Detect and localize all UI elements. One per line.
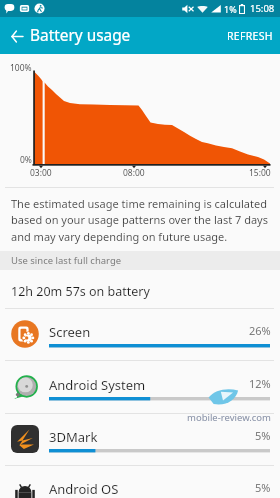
- staticText: Android OS: [49, 480, 119, 498]
- staticText: 08:00: [123, 167, 145, 179]
- button[interactable]: Android System: [0, 361, 280, 413]
- staticText: 100%: [10, 62, 32, 74]
- staticText: 03:00: [30, 167, 52, 179]
- staticText: 15:08: [250, 2, 275, 15]
- button[interactable]: Screen: [0, 308, 280, 360]
- staticText: Screen: [49, 323, 91, 341]
- staticText: 1%: [224, 3, 237, 15]
- staticText: REFRESH: [227, 29, 273, 43]
- staticText: 0%: [20, 154, 32, 166]
- button[interactable]: 3DMark: [0, 413, 280, 465]
- staticText: 12%: [249, 376, 271, 391]
- staticText: 5%: [255, 428, 271, 443]
- button[interactable]: REFRESH: [220, 20, 280, 52]
- staticText: 12h 20m 57s on battery: [11, 283, 150, 300]
- staticText: 5%: [255, 480, 271, 495]
- staticText: 26%: [249, 323, 271, 338]
- staticText: Android System: [49, 376, 146, 394]
- staticText: The estimated usage time remaining is ca…: [11, 196, 270, 245]
- staticText: Use since last full charge: [11, 254, 122, 267]
- staticText: 3DMark: [49, 428, 98, 446]
- staticText: mobile-review.com: [187, 411, 271, 424]
- staticText: Battery usage: [30, 25, 131, 46]
- button[interactable]: Android OS: [0, 465, 280, 498]
- staticText: 15:00: [249, 167, 271, 179]
- button[interactable]: Navigate up: [4, 23, 30, 49]
